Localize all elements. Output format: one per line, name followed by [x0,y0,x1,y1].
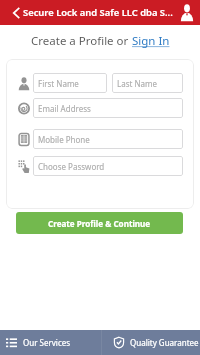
staticText: Sign In [132,33,170,49]
staticText: Create Profile & Continue [48,218,151,229]
button[interactable]: Quality Guarantee [102,330,200,355]
button[interactable]: Create Profile & Continue [16,212,183,234]
staticText: Our Services [23,337,71,348]
button[interactable]: Email Address [33,98,183,118]
button[interactable]: Mobile Phone [33,129,183,149]
staticText: Choose Password [38,161,105,172]
button[interactable]: Back [0,0,23,25]
staticText: First Name [38,78,79,89]
staticText: Create a Profile or [31,33,132,49]
staticText: Secure Lock and Safe LLC dba S... [23,6,173,19]
staticText: Email Address [38,103,91,114]
staticText: Mobile Phone [38,134,90,145]
button[interactable]: Last Name [112,73,183,93]
staticText: Quality Guarantee [130,337,199,348]
button[interactable]: Sign In [132,33,170,49]
button[interactable]: Account [179,0,200,25]
button[interactable]: Choose Password [33,156,183,176]
button[interactable]: Our Services [0,330,101,355]
staticText: Last Name [117,78,158,89]
button[interactable]: First Name [33,73,107,93]
